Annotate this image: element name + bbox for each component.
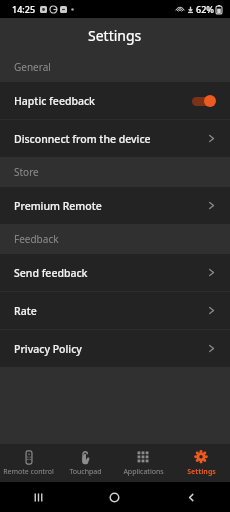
button[interactable]: Privacy Policy [0,330,230,367]
button[interactable]: Haptic feedback [0,82,230,119]
staticText: Remote control [3,467,54,477]
staticText: Premium Remote [14,199,102,213]
staticText: Rate [14,304,37,318]
staticText: Touchpad [69,467,102,477]
staticText: Store [14,165,39,179]
staticText: General [14,60,51,74]
staticText: 62% [196,3,214,15]
button[interactable]: Premium Remote [0,187,230,224]
staticText: Feedback [14,232,59,246]
button[interactable]: Rate [0,292,230,329]
staticText: 14:25 [12,3,36,15]
staticText: Settings [88,26,142,45]
staticText: Send feedback [14,266,88,280]
staticText: Applications [123,467,164,477]
staticText: Privacy Policy [14,342,82,356]
button[interactable]: Settings [172,444,230,482]
staticText: Settings [187,467,216,477]
button[interactable]: Send feedback [0,254,230,291]
button[interactable]: Remote control [0,444,57,482]
staticText: Disconnect from the device [14,132,151,146]
staticText: Haptic feedback [14,94,95,108]
button[interactable]: Touchpad [57,444,114,482]
button[interactable]: Disconnect from the device [0,120,230,157]
button[interactable]: Applications [114,444,172,482]
